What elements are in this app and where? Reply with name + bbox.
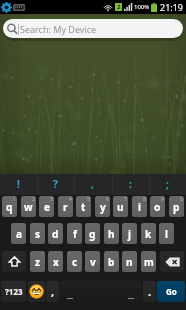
button[interactable]: , bbox=[74, 173, 111, 194]
button[interactable]: e bbox=[39, 196, 54, 217]
staticText: ? bbox=[53, 177, 58, 191]
button[interactable]: ?123 bbox=[1, 281, 26, 302]
button[interactable]: v bbox=[85, 251, 100, 272]
button[interactable]: a bbox=[11, 223, 26, 244]
staticText: u bbox=[117, 200, 124, 214]
button[interactable]: Emoji bbox=[28, 281, 45, 302]
staticText: n bbox=[126, 255, 133, 269]
button[interactable]: g bbox=[85, 223, 100, 244]
staticText: , bbox=[91, 177, 94, 191]
staticText: t bbox=[81, 200, 86, 214]
staticText: g bbox=[89, 227, 96, 241]
button[interactable]: n bbox=[122, 251, 137, 272]
staticText: Go bbox=[166, 286, 177, 297]
staticText: j bbox=[128, 227, 131, 241]
button[interactable]: h bbox=[104, 223, 119, 244]
staticText: 2 bbox=[32, 196, 35, 203]
staticText: v bbox=[90, 255, 96, 269]
button[interactable]: Delete bbox=[160, 251, 184, 272]
staticText: z bbox=[35, 255, 40, 269]
staticText: 5 bbox=[87, 196, 90, 203]
staticText: i bbox=[138, 200, 141, 214]
button[interactable]: y bbox=[95, 196, 110, 217]
staticText: : bbox=[129, 177, 132, 191]
staticText: 6 bbox=[106, 196, 109, 203]
staticText: q bbox=[6, 200, 13, 214]
staticText: , bbox=[51, 284, 55, 299]
button[interactable]: Shift bbox=[2, 251, 26, 272]
staticText: x bbox=[53, 255, 59, 269]
button[interactable]: ; bbox=[149, 173, 186, 194]
button[interactable]: l bbox=[159, 223, 174, 244]
staticText: e bbox=[44, 200, 50, 214]
button[interactable]: r bbox=[58, 196, 73, 217]
staticText: o bbox=[154, 200, 161, 214]
staticText: f bbox=[73, 227, 77, 241]
button[interactable]: Go bbox=[157, 281, 185, 302]
staticText: d bbox=[52, 227, 59, 241]
staticText: p bbox=[173, 200, 180, 214]
button[interactable]: i bbox=[132, 196, 147, 217]
button[interactable]: w bbox=[21, 196, 36, 217]
button[interactable]: b bbox=[104, 251, 119, 272]
button[interactable]: j bbox=[122, 223, 137, 244]
staticText: 2 bbox=[117, 3, 121, 11]
staticText: h bbox=[108, 227, 115, 241]
button[interactable]: d bbox=[48, 223, 63, 244]
staticText: 0 bbox=[180, 196, 183, 203]
button[interactable]: ? bbox=[37, 173, 74, 194]
button[interactable]: m bbox=[141, 251, 156, 272]
button[interactable]: : bbox=[112, 173, 149, 194]
staticText: 1 bbox=[13, 196, 16, 203]
staticText: r bbox=[63, 200, 68, 214]
button[interactable] bbox=[60, 281, 141, 302]
staticText: 4 bbox=[69, 196, 72, 203]
staticText: s bbox=[35, 227, 41, 241]
staticText: 21:19 bbox=[160, 1, 184, 13]
button[interactable]: u bbox=[113, 196, 128, 217]
button[interactable]: ! bbox=[0, 173, 37, 194]
button[interactable]: p bbox=[169, 196, 184, 217]
button[interactable]: c bbox=[67, 251, 82, 272]
staticText: b bbox=[108, 255, 115, 269]
staticText: ! bbox=[17, 177, 20, 191]
button[interactable]: f bbox=[67, 223, 82, 244]
staticText: c bbox=[72, 255, 78, 269]
staticText: 100% bbox=[134, 3, 150, 11]
staticText: k bbox=[145, 227, 152, 241]
staticText: w bbox=[24, 200, 33, 214]
staticText: a bbox=[16, 227, 22, 241]
staticText: y bbox=[100, 200, 106, 214]
staticText: l bbox=[165, 227, 168, 241]
staticText: 7 bbox=[124, 196, 127, 203]
button[interactable]: , bbox=[46, 281, 59, 302]
button[interactable]: Search: My Device bbox=[3, 19, 183, 38]
button[interactable]: k bbox=[141, 223, 156, 244]
button[interactable]: o bbox=[150, 196, 165, 217]
staticText: 3 bbox=[50, 196, 53, 203]
staticText: 8 bbox=[143, 196, 146, 203]
staticText: ; bbox=[166, 177, 169, 191]
button[interactable]: z bbox=[30, 251, 45, 272]
button[interactable]: x bbox=[48, 251, 63, 272]
staticText: m bbox=[144, 255, 154, 269]
button[interactable]: s bbox=[30, 223, 45, 244]
staticText: Search: My Device bbox=[20, 23, 97, 35]
button[interactable]: q bbox=[2, 196, 17, 217]
button[interactable]: . bbox=[143, 281, 156, 302]
staticText: ?123 bbox=[5, 286, 23, 297]
staticText: . bbox=[148, 284, 152, 299]
button[interactable]: t bbox=[76, 196, 91, 217]
staticText: 9 bbox=[161, 196, 164, 203]
